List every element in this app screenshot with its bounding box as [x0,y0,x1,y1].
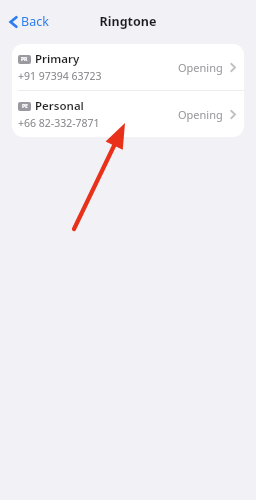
staticText: Back [21,13,49,30]
other: Open [230,109,236,120]
staticText: PR [21,56,28,63]
staticText: Opening [178,60,223,75]
staticText: +66 82-332-7871 [18,116,100,130]
staticText: Primary [35,51,80,67]
staticText: Opening [178,107,223,122]
staticText: +91 97394 63723 [18,69,102,83]
staticText: Ringtone [0,13,256,30]
other: Open [230,62,236,73]
button[interactable]: Back [6,9,52,34]
staticText: PE [22,103,28,110]
button[interactable]: PR [12,44,244,90]
staticText: Personal [35,98,84,114]
button[interactable]: PE [12,91,244,137]
